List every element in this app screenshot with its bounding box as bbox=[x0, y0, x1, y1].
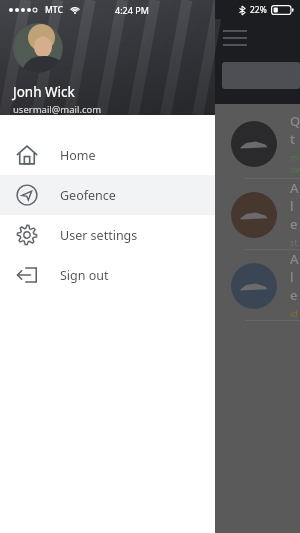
button[interactable]: Open navigation drawer bbox=[221, 28, 249, 48]
button[interactable]: Ale bbox=[0, 250, 300, 321]
staticText: Ale bbox=[290, 250, 300, 304]
staticText: 4:24 PM bbox=[115, 4, 149, 16]
staticText: Geofence bbox=[60, 187, 116, 204]
staticText: User settings bbox=[60, 227, 138, 244]
staticText: mov bbox=[290, 151, 300, 175]
button[interactable]: User settings bbox=[0, 215, 215, 255]
button[interactable]: Home bbox=[0, 135, 215, 175]
staticText: usermail@mail.com bbox=[13, 103, 102, 115]
staticText: Home bbox=[60, 147, 96, 164]
button[interactable]: Ale bbox=[0, 179, 300, 250]
staticText: stop bbox=[290, 236, 300, 250]
staticText: idle bbox=[290, 307, 300, 321]
staticText: MTC bbox=[45, 4, 63, 16]
staticText: Ale bbox=[290, 179, 300, 233]
button[interactable]: Sign out bbox=[0, 255, 215, 295]
button[interactable]: Geofence bbox=[0, 175, 215, 215]
staticText: Sign out bbox=[60, 267, 109, 284]
staticText: 22% bbox=[250, 4, 267, 16]
button[interactable]: Qt bbox=[0, 108, 300, 179]
staticText: Qt bbox=[290, 112, 300, 148]
staticText: Jonh Wick bbox=[13, 83, 75, 101]
